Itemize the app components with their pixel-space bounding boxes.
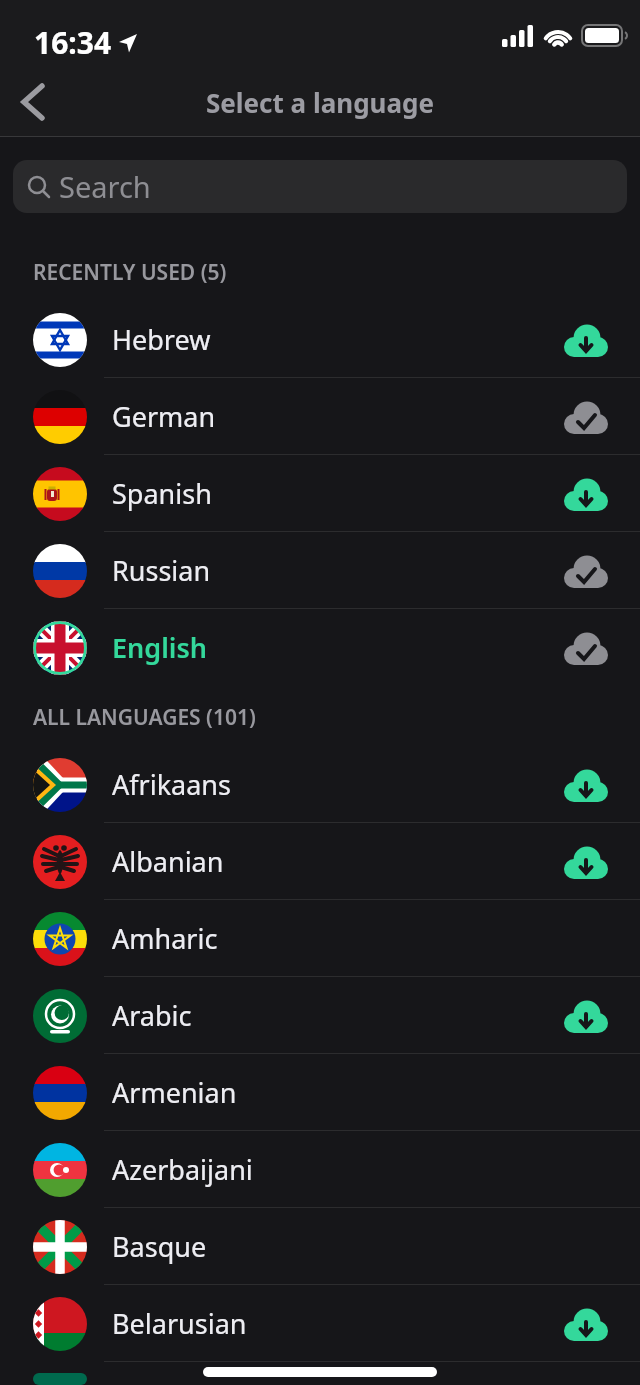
- staticText: ALL LANGUAGES (101): [33, 703, 256, 732]
- button[interactable]: [10, 80, 54, 124]
- button[interactable]: Belarusian: [0, 1285, 640, 1362]
- staticText: English: [112, 629, 208, 666]
- staticText: 16:34: [34, 22, 112, 63]
- button[interactable]: Hebrew: [0, 301, 640, 378]
- button[interactable]: Amharic: [0, 900, 640, 977]
- staticText: Russian: [112, 552, 211, 589]
- button[interactable]: Armenian: [0, 1054, 640, 1131]
- staticText: Spanish: [112, 475, 212, 512]
- button[interactable]: Basque: [0, 1208, 640, 1285]
- staticText: Basque: [112, 1228, 207, 1265]
- button[interactable]: Russian: [0, 532, 640, 609]
- staticText: Hebrew: [112, 321, 211, 358]
- staticText: Arabic: [112, 997, 192, 1034]
- button[interactable]: Search: [13, 160, 627, 213]
- button[interactable]: Afrikaans: [0, 746, 640, 823]
- staticText: Amharic: [112, 920, 218, 957]
- staticText: Albanian: [112, 843, 224, 880]
- button[interactable]: Albanian: [0, 823, 640, 900]
- staticText: Afrikaans: [112, 766, 231, 803]
- staticText: Azerbaijani: [112, 1151, 253, 1188]
- button[interactable]: Spanish: [0, 455, 640, 532]
- staticText: Search: [59, 167, 151, 206]
- staticText: German: [112, 398, 216, 435]
- button[interactable]: German: [0, 378, 640, 455]
- staticText: Select a language: [206, 85, 434, 120]
- button[interactable]: English: [0, 609, 640, 686]
- button[interactable]: Azerbaijani: [0, 1131, 640, 1208]
- staticText: Armenian: [112, 1074, 237, 1111]
- staticText: RECENTLY USED (5): [33, 258, 227, 287]
- staticText: Belarusian: [112, 1305, 247, 1342]
- button[interactable]: Arabic: [0, 977, 640, 1054]
